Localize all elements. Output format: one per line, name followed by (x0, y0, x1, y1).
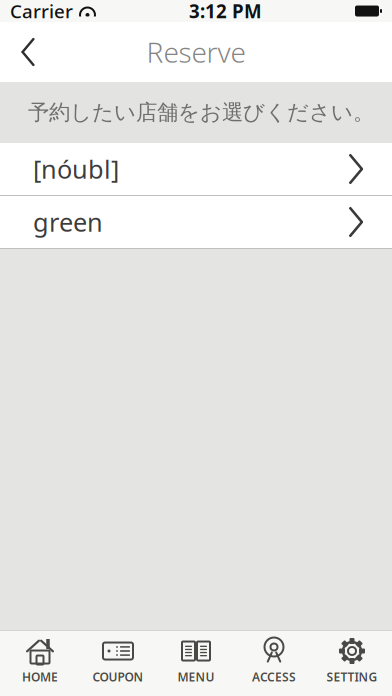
button[interactable]: green (0, 196, 392, 248)
staticText: HOME (22, 669, 58, 685)
button[interactable]: MENU (157, 637, 235, 695)
staticText: 予約したい店舗をお選びください。 (28, 99, 374, 126)
staticText: MENU (177, 669, 214, 685)
button[interactable]: ACCESS (235, 637, 313, 695)
staticText: COUPON (92, 669, 143, 685)
staticText: [nóubl] (33, 152, 119, 186)
staticText: ACCESS (252, 669, 296, 685)
button[interactable]: [nóubl] (0, 143, 392, 195)
button[interactable]: Back (0, 22, 56, 82)
button[interactable]: SETTING (313, 637, 391, 695)
staticText: 3:12 PM (189, 0, 262, 23)
button[interactable]: HOME (1, 637, 79, 695)
staticText: green (33, 205, 103, 239)
button[interactable]: COUPON (79, 637, 157, 695)
staticText: Carrier (10, 0, 73, 23)
staticText: Reserve (146, 33, 245, 71)
staticText: SETTING (326, 669, 377, 685)
